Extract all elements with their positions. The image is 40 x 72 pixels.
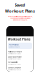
staticText: Sunday Long Run (8, 67, 21, 69)
staticText: Workout Plans (5, 8, 35, 14)
button[interactable]: Sunday Long Run (6, 66, 33, 71)
staticText: 6 weeks · 4 days (9, 46, 20, 48)
staticText: 45 min · 8 exercises (8, 53, 21, 55)
staticText: 38 min · 7 exercises (8, 58, 21, 60)
staticText: 60 min · endurance (8, 69, 21, 71)
staticText: Saved (14, 2, 25, 8)
staticText: Workout Plans (8, 38, 30, 41)
staticText: Full Body Strength (8, 51, 22, 53)
staticText: Upper Body Power (8, 56, 22, 58)
staticText: Every routine you save lives here, ready… (8, 15, 32, 21)
staticText: Push · Pull · Legs (9, 44, 19, 46)
button[interactable]: Full Body Strength (6, 50, 33, 55)
button[interactable]: Core & Mobility (6, 61, 33, 66)
button[interactable]: Upper Body Power (6, 55, 33, 61)
staticText: 25 min · 6 exercises (8, 63, 21, 65)
staticText: Core & Mobility (8, 61, 18, 63)
